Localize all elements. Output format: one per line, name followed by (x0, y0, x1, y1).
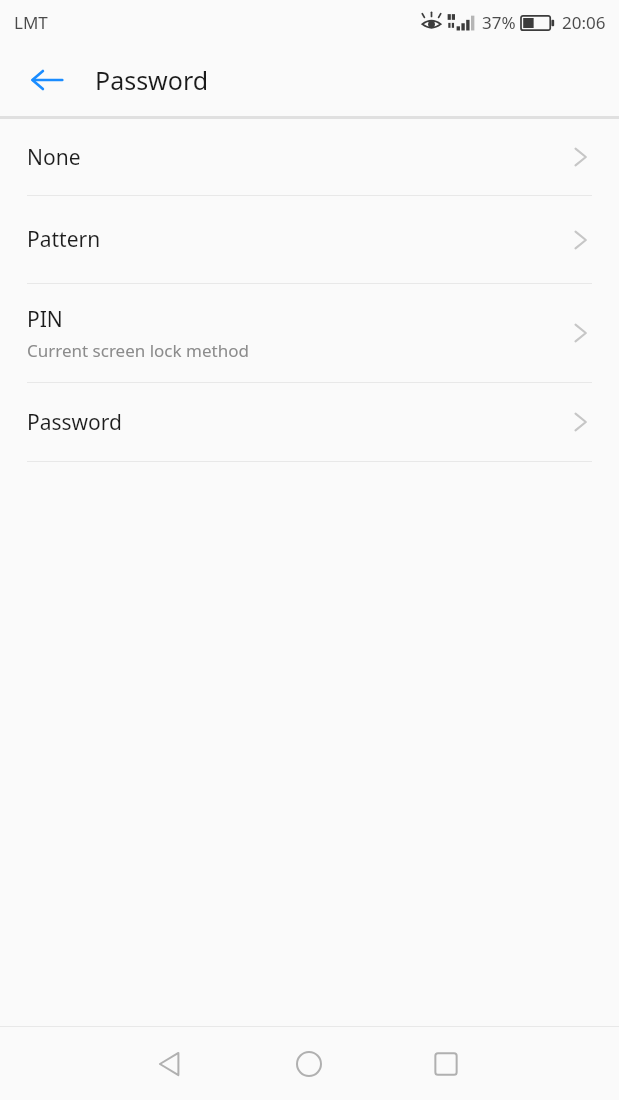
staticText: None (27, 143, 81, 172)
staticText: Password (27, 408, 122, 437)
staticText: 37% (482, 11, 516, 34)
button[interactable]: None (0, 119, 619, 195)
button[interactable]: Back (125, 1027, 215, 1100)
button[interactable]: PIN (0, 284, 619, 382)
staticText: PIN (27, 305, 63, 334)
staticText: Password (95, 63, 209, 97)
staticText: LMT (14, 11, 48, 34)
button[interactable]: Password (0, 383, 619, 461)
button[interactable]: Back (18, 51, 76, 109)
button[interactable]: Recents (401, 1027, 491, 1100)
staticText: Current screen lock method (27, 339, 249, 362)
button[interactable]: Home (264, 1027, 354, 1100)
button[interactable]: Pattern (0, 196, 619, 283)
staticText: 20:06 (562, 11, 606, 34)
staticText: Pattern (27, 225, 101, 254)
